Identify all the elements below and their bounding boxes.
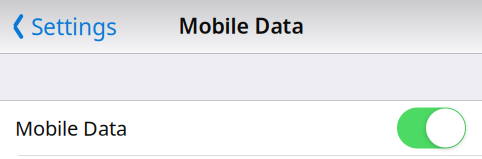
staticText: Settings [31, 11, 117, 41]
staticText: Mobile Data [178, 11, 303, 40]
staticText: Mobile Data [15, 115, 127, 141]
button[interactable]: Settings [0, 0, 125, 53]
button[interactable]: Mobile Data [0, 101, 482, 155]
